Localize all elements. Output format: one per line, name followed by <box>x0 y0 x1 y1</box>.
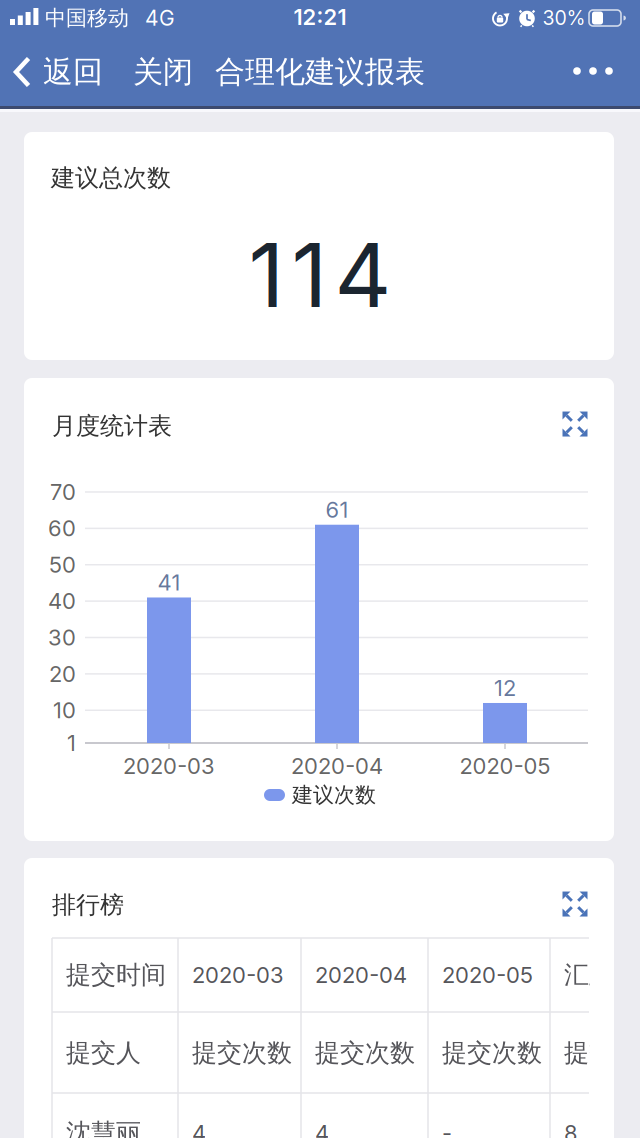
staticText: 12:21 <box>293 4 346 30</box>
staticText: 2020-03 <box>192 962 284 988</box>
staticText: 沈慧丽 <box>66 1117 141 1138</box>
staticText: 4 <box>334 222 391 328</box>
staticText: 提交次数 <box>442 1037 542 1069</box>
staticText: 4 <box>192 1120 206 1138</box>
staticText: 建议次数 <box>292 782 376 808</box>
staticText: 60 <box>48 515 76 542</box>
staticText: 提交时间 <box>66 959 166 991</box>
staticText: 4G <box>145 5 175 31</box>
staticText: 关闭 <box>133 53 193 91</box>
staticText: 提交次数 <box>315 1037 415 1069</box>
staticText: 12 <box>494 675 516 701</box>
staticText: 10 <box>53 697 76 723</box>
staticText: 提交次数 <box>564 1037 640 1069</box>
staticText: - <box>442 1120 452 1138</box>
staticText: 70 <box>50 479 76 505</box>
staticText: 40 <box>48 588 76 614</box>
staticText: 61 <box>325 496 348 523</box>
staticText: 50 <box>49 551 76 578</box>
staticText: 41 <box>157 569 180 596</box>
staticText: 2020-04 <box>315 962 407 988</box>
staticText: 1 <box>67 730 76 756</box>
staticText: 汇总 <box>564 959 614 991</box>
staticText: 返回 <box>43 53 103 91</box>
staticText: 建议总次数 <box>51 163 171 193</box>
staticText: 中国移动 <box>45 5 129 31</box>
staticText: 排行榜 <box>52 890 124 920</box>
staticText: 合理化建议报表 <box>215 53 425 91</box>
staticText: 4 <box>315 1120 329 1138</box>
staticText: 提交次数 <box>192 1037 292 1069</box>
button[interactable] <box>562 891 588 917</box>
staticText: 2020-03 <box>123 753 215 779</box>
staticText: 提交人 <box>66 1037 141 1069</box>
staticText: 2020-05 <box>442 962 533 988</box>
staticText: 30% <box>542 6 585 30</box>
staticText: 20 <box>49 661 76 687</box>
staticText: 1 <box>291 222 327 328</box>
staticText: 2020-04 <box>291 753 383 779</box>
staticText: 月度统计表 <box>52 411 172 441</box>
button[interactable]: 返回 <box>6 47 110 97</box>
button[interactable] <box>570 64 616 78</box>
staticText: 8 <box>564 1120 578 1138</box>
staticText: 30 <box>48 624 76 651</box>
staticText: 1 <box>248 222 284 328</box>
staticText: 2020-05 <box>459 753 550 779</box>
button[interactable]: 关闭 <box>123 47 203 97</box>
button[interactable] <box>562 411 588 437</box>
